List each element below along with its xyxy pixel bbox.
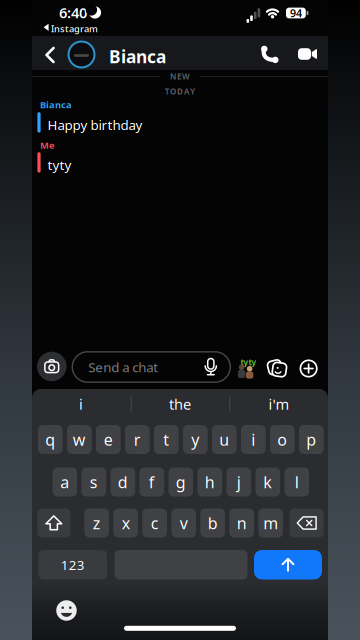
button[interactable]: d (110, 467, 135, 496)
button[interactable]: o (270, 425, 295, 454)
button[interactable] (55, 599, 77, 621)
staticText: 123 (61, 556, 85, 574)
staticText: w (73, 429, 86, 450)
button[interactable] (298, 47, 317, 61)
button[interactable]: r (125, 425, 150, 454)
button[interactable]: i (241, 425, 266, 454)
button[interactable]: 123 (38, 550, 107, 579)
staticText: c (151, 512, 159, 534)
staticText: a (60, 471, 69, 493)
button[interactable] (254, 550, 322, 579)
button[interactable] (67, 40, 95, 68)
staticText: i'm (268, 394, 289, 414)
button[interactable]: z (84, 508, 109, 537)
button[interactable] (257, 43, 281, 65)
staticText: l (295, 471, 299, 493)
button[interactable]: k (255, 467, 280, 496)
staticText: tyty (240, 357, 256, 368)
button[interactable] (37, 508, 70, 537)
button[interactable]: h (197, 467, 222, 496)
staticText: TODAY (165, 86, 195, 97)
staticText: 94 (290, 6, 302, 20)
staticText: i (79, 394, 83, 414)
button[interactable]: tyty (237, 357, 254, 379)
button[interactable]: s (81, 467, 106, 496)
staticText: d (118, 471, 128, 493)
button[interactable]: y (183, 425, 208, 454)
button[interactable] (41, 43, 59, 66)
button[interactable]: a (52, 467, 77, 496)
button[interactable]: b (200, 508, 225, 537)
staticText: g (176, 471, 186, 493)
staticText: b (208, 512, 218, 534)
button[interactable]: Send a chat (72, 352, 230, 382)
staticText: y (191, 429, 199, 450)
staticText: 6:40 (59, 3, 87, 22)
staticText: j (237, 471, 241, 493)
staticText: Happy birthday (47, 116, 142, 134)
button[interactable]: g (168, 467, 193, 496)
button[interactable]: f (139, 467, 164, 496)
staticText: Me (40, 139, 55, 151)
staticText: Send a chat (88, 358, 158, 376)
button[interactable]: i'm (231, 391, 327, 417)
staticText: q (45, 429, 55, 450)
staticText: Bianca (109, 45, 166, 68)
staticText: f (149, 471, 155, 493)
staticText: n (237, 512, 247, 534)
staticText: the (169, 394, 191, 414)
staticText: e (104, 429, 113, 450)
button[interactable] (267, 358, 288, 378)
staticText: i (251, 429, 255, 450)
button[interactable] (300, 360, 317, 377)
button[interactable] (37, 352, 66, 381)
button[interactable]: q (38, 425, 63, 454)
button[interactable]: v (171, 508, 196, 537)
button[interactable]: u (212, 425, 237, 454)
button[interactable]: i (33, 391, 129, 417)
staticText: NEW (170, 71, 190, 82)
staticText: Bianca (40, 98, 72, 111)
staticText: z (93, 512, 101, 534)
staticText: x (122, 512, 130, 534)
staticText: k (263, 471, 272, 493)
staticText: tyty (47, 156, 71, 174)
staticText: Instagram (51, 22, 98, 35)
staticText: m (263, 512, 278, 534)
button[interactable]: c (142, 508, 167, 537)
staticText: h (205, 471, 215, 493)
button[interactable]: t (154, 425, 179, 454)
staticText: s (90, 471, 98, 493)
button[interactable]: the (132, 391, 228, 417)
button[interactable]: e (96, 425, 121, 454)
button[interactable]: w (67, 425, 92, 454)
staticText: v (180, 512, 188, 534)
button[interactable] (290, 508, 324, 537)
button[interactable]: j (226, 467, 251, 496)
staticText: p (306, 429, 316, 450)
button[interactable]: p (299, 425, 324, 454)
staticText: o (277, 429, 287, 450)
button[interactable]: n (229, 508, 254, 537)
button[interactable]: l (284, 467, 309, 496)
staticText: r (134, 429, 141, 450)
button[interactable]: x (113, 508, 138, 537)
staticText: u (219, 429, 229, 450)
button[interactable]: m (258, 508, 283, 537)
staticText: t (163, 429, 169, 450)
